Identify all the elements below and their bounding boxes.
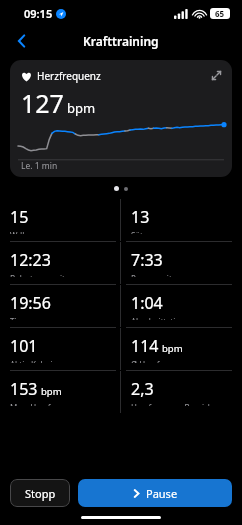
staticText: 15	[10, 206, 29, 228]
staticText: 12:23	[10, 249, 51, 271]
button[interactable]: 2,3	[121, 371, 242, 413]
button[interactable]: 153	[0, 371, 120, 413]
staticText: 09:15	[24, 6, 53, 21]
staticText: 19:56	[10, 292, 51, 314]
staticText: Sätze	[131, 230, 152, 234]
staticText: 101	[10, 335, 38, 357]
button[interactable]: 1:04	[121, 285, 242, 327]
button[interactable]: Pause	[78, 479, 232, 507]
button[interactable]: 19:56	[0, 285, 120, 327]
staticText: Herzfrequenz	[37, 69, 101, 83]
button[interactable]: 13	[121, 199, 242, 241]
staticText: Pause	[146, 486, 178, 501]
button[interactable]: 12:23	[0, 242, 120, 284]
staticText: 2,3	[131, 378, 154, 400]
staticText: Stopp	[25, 486, 56, 501]
staticText: 153	[10, 378, 38, 400]
button[interactable]: 114	[121, 328, 242, 370]
button[interactable]: 101	[0, 328, 120, 370]
staticText: 13	[131, 206, 150, 228]
staticText: Krafttraining	[83, 33, 159, 49]
staticText: bpm	[67, 99, 96, 117]
staticText: 7:33	[131, 249, 163, 271]
staticText: 114	[131, 335, 159, 357]
button[interactable]: 15	[0, 199, 120, 241]
button[interactable]: Zurück	[8, 27, 36, 55]
staticText: Max. Herzfrequenz	[10, 402, 82, 406]
staticText: Belastungszeit	[10, 273, 65, 277]
staticText: Timer	[10, 316, 32, 320]
staticText: Le. 1 min	[21, 160, 58, 172]
staticText: Aktiv-Kalorien	[10, 359, 63, 363]
staticText: Wdh.:	[10, 230, 32, 234]
staticText: Pausenzeit	[131, 273, 172, 277]
staticText: Abschnittstimer	[131, 316, 191, 320]
button[interactable]: Erweitern	[208, 67, 224, 83]
staticText: 65	[215, 8, 225, 19]
staticText: 127	[21, 86, 64, 120]
staticText: bpm	[162, 342, 183, 355]
button[interactable]: 7:33	[121, 242, 242, 284]
staticText: Ø Herzfrequenz	[131, 359, 191, 363]
staticText: Herzfrequenz-Bereich	[131, 402, 213, 406]
button[interactable]: Stopp	[10, 479, 70, 507]
staticText: bpm	[41, 385, 62, 398]
staticText: 1:04	[131, 292, 163, 314]
button[interactable]: Herzfrequenz	[10, 60, 232, 177]
